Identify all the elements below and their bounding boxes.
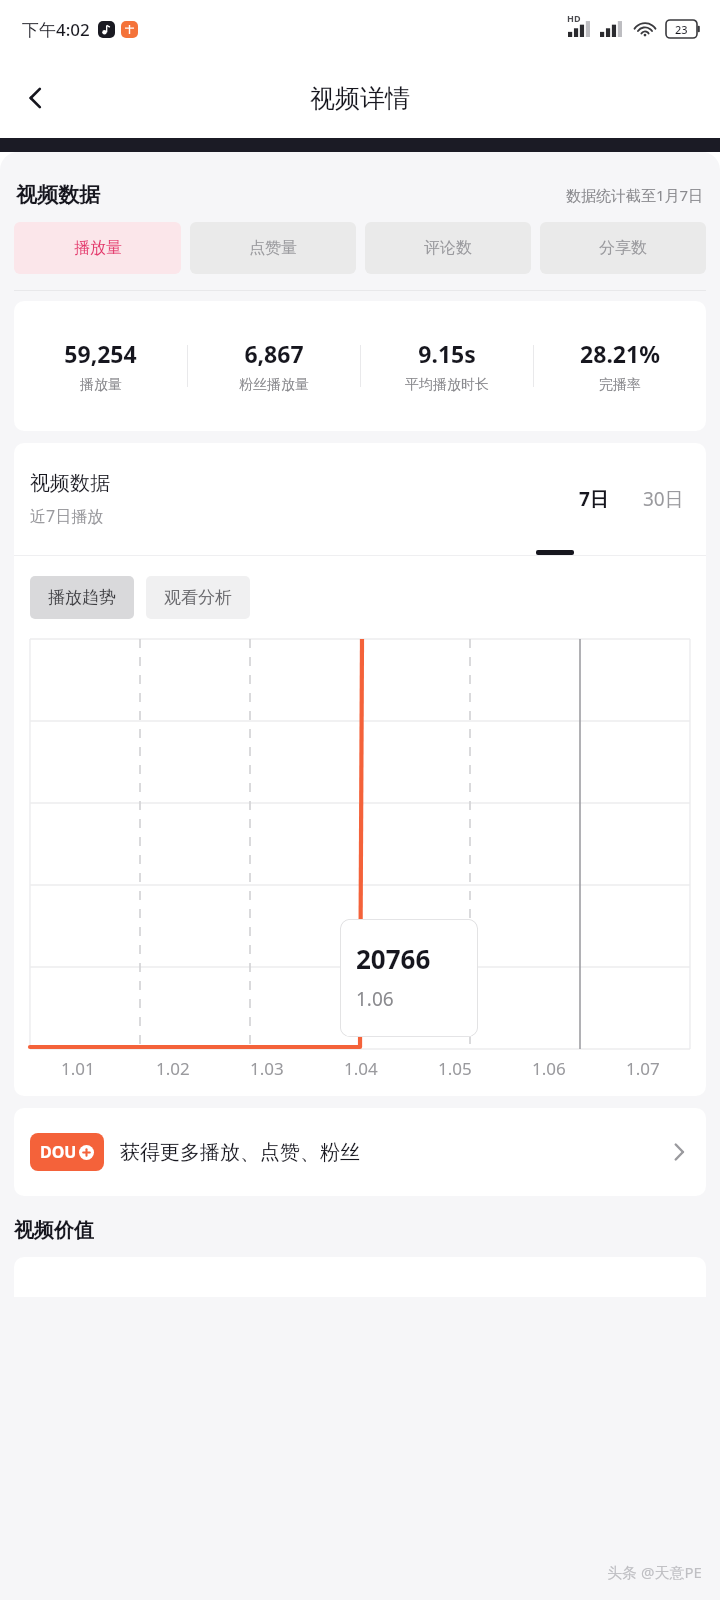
button[interactable]: 30日 <box>639 486 688 512</box>
staticText: 视频数据 <box>30 471 110 496</box>
button[interactable]: 播放趋势 <box>30 576 134 619</box>
staticText: 7日 <box>579 486 609 512</box>
staticText: 1.06 <box>356 986 394 1012</box>
staticText: 59,254 <box>64 338 137 369</box>
button[interactable]: 评论数 <box>365 222 531 274</box>
staticText: 30日 <box>643 486 684 512</box>
staticText: 20766 <box>356 941 431 976</box>
staticText: 视频详情 <box>310 83 410 114</box>
staticText: 1.03 <box>250 1057 284 1080</box>
staticText: 28.21% <box>580 338 660 369</box>
button[interactable]: 观看分析 <box>146 576 250 619</box>
staticText: 1.02 <box>156 1057 190 1080</box>
staticText: 23 <box>675 22 688 37</box>
staticText: 1.07 <box>626 1057 660 1080</box>
staticText: 近7日播放 <box>30 505 104 527</box>
button[interactable]: 分享数 <box>540 222 706 274</box>
button[interactable]: Back <box>8 70 64 126</box>
staticText: 视频数据 <box>16 182 100 208</box>
staticText: 头条 @天意PE <box>607 1562 702 1582</box>
staticText: 播放趋势 <box>48 587 116 608</box>
staticText: 9.15s <box>418 338 476 369</box>
staticText: 1.05 <box>438 1057 472 1080</box>
staticText: 分享数 <box>599 238 647 258</box>
staticText: 观看分析 <box>164 587 232 608</box>
button[interactable]: 点赞量 <box>190 222 356 274</box>
staticText: 1.04 <box>344 1057 378 1080</box>
staticText: 6,867 <box>244 338 304 369</box>
staticText: 点赞量 <box>249 238 297 258</box>
staticText: 1.01 <box>61 1057 95 1080</box>
button[interactable]: DOU <box>14 1108 706 1196</box>
staticText: 平均播放时长 <box>405 376 489 394</box>
staticText: 获得更多播放、点赞、粉丝 <box>120 1140 360 1165</box>
staticText: 播放量 <box>80 376 122 394</box>
staticText: 完播率 <box>599 376 641 394</box>
button[interactable]: 7日 <box>575 486 613 512</box>
staticText: 评论数 <box>424 238 472 258</box>
staticText: 播放量 <box>74 238 122 258</box>
staticText: 粉丝播放量 <box>239 376 309 394</box>
staticText: HD <box>567 12 581 24</box>
staticText: 视频价值 <box>14 1218 94 1243</box>
staticText: DOU <box>40 1141 77 1163</box>
button[interactable]: 播放量 <box>14 222 181 274</box>
staticText: 数据统计截至1月7日 <box>566 185 704 205</box>
staticText: 1.06 <box>532 1057 566 1080</box>
staticText: 下午4:02 <box>22 18 90 41</box>
